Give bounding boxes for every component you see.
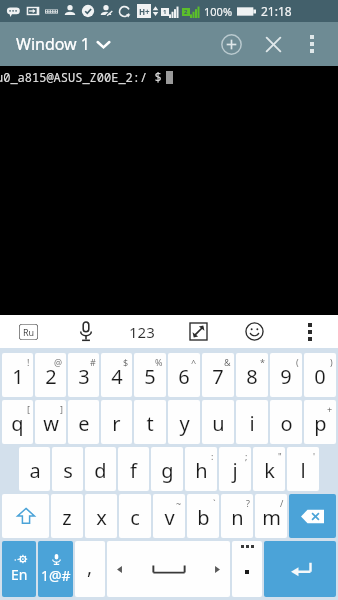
button[interactable]: 4	[101, 353, 132, 397]
staticText: Window 1	[16, 33, 90, 55]
button[interactable]: l	[287, 447, 319, 491]
staticText: 1	[163, 8, 167, 16]
staticText: 21:18	[261, 3, 292, 19]
button[interactable]: h	[185, 447, 217, 491]
button[interactable]: Emoji	[226, 315, 282, 348]
staticText: +	[327, 403, 333, 415]
button[interactable]: Language settings	[2, 541, 36, 597]
button[interactable]: m	[255, 494, 287, 538]
button[interactable]: 3	[68, 353, 99, 397]
staticText: z	[62, 504, 72, 531]
button[interactable]: Close window	[256, 27, 290, 61]
button[interactable]: b	[187, 494, 219, 538]
staticText: m	[262, 504, 281, 531]
staticText: ]	[60, 403, 63, 415]
staticText: 6	[178, 363, 190, 390]
staticText: v	[164, 504, 175, 531]
button[interactable]: n	[221, 494, 253, 538]
staticText: #	[90, 356, 96, 368]
button[interactable]: c	[119, 494, 151, 538]
staticText: s	[63, 457, 73, 484]
staticText: 5	[144, 363, 156, 390]
button[interactable]: y	[168, 400, 200, 444]
staticText: 0	[314, 363, 326, 390]
staticText: 2	[184, 8, 188, 16]
button[interactable]: 123	[114, 315, 170, 348]
button[interactable]: Space	[107, 541, 230, 597]
staticText: d	[94, 457, 107, 484]
staticText: @	[54, 356, 63, 368]
staticText: u	[212, 410, 225, 437]
staticText: 4	[111, 363, 123, 390]
button[interactable]: Voice input	[57, 315, 114, 348]
button[interactable]: j	[219, 447, 251, 491]
button[interactable]: d	[85, 447, 116, 491]
staticText: 123	[129, 322, 155, 342]
button[interactable]: x	[85, 494, 117, 538]
button[interactable]: i	[236, 400, 268, 444]
button[interactable]: Symbols and voice	[38, 541, 73, 597]
staticText: h	[195, 457, 208, 484]
staticText: q	[11, 410, 24, 437]
staticText: '	[313, 450, 316, 462]
button[interactable]: Enter	[264, 541, 336, 597]
button[interactable]: w	[35, 400, 66, 444]
button[interactable]: 6	[168, 353, 200, 397]
button[interactable]: f	[118, 447, 149, 491]
staticText: &	[224, 356, 231, 368]
staticText: x	[96, 504, 107, 531]
button[interactable]: More options	[296, 28, 328, 60]
staticText: 1@#	[41, 566, 71, 585]
button[interactable]: 1	[2, 353, 33, 397]
button[interactable]: 5	[134, 353, 166, 397]
button[interactable]: 7	[202, 353, 234, 397]
staticText: :	[211, 450, 214, 462]
button[interactable]: r	[101, 400, 132, 444]
button[interactable]: v	[153, 494, 185, 538]
button[interactable]: 8	[236, 353, 268, 397]
staticText: ?	[246, 497, 250, 509]
button[interactable]: Resize keyboard	[170, 315, 226, 348]
staticText: !	[27, 356, 30, 368]
button[interactable]: 9	[270, 353, 302, 397]
button[interactable]: Backspace	[289, 494, 336, 538]
staticText: ,	[87, 554, 93, 580]
staticText: 3	[78, 363, 90, 390]
staticText: )	[330, 356, 333, 368]
button[interactable]: 2	[35, 353, 66, 397]
staticText: [	[27, 403, 30, 415]
button[interactable]: o	[270, 400, 302, 444]
button[interactable]: e	[68, 400, 99, 444]
staticText: ;	[245, 450, 248, 462]
button[interactable]: a	[19, 447, 50, 491]
staticText: `	[213, 497, 216, 509]
button[interactable]: z	[51, 494, 83, 538]
staticText: H+	[139, 6, 150, 17]
button[interactable]: s	[52, 447, 83, 491]
staticText: n	[231, 504, 244, 531]
button[interactable]: Period	[232, 541, 262, 597]
staticText: 7	[212, 363, 224, 390]
staticText: k	[264, 457, 275, 484]
staticText: 9	[280, 363, 292, 390]
button[interactable]: Comma	[75, 541, 105, 597]
staticText: 1	[12, 363, 24, 390]
staticText: j	[232, 457, 238, 484]
staticText: t	[146, 410, 154, 437]
button[interactable]: New window	[214, 27, 248, 61]
staticText: b	[197, 504, 210, 531]
button[interactable]: More keyboard options	[282, 315, 338, 348]
button[interactable]: Window 1	[14, 27, 112, 61]
button[interactable]: t	[134, 400, 166, 444]
button[interactable]: u	[202, 400, 234, 444]
staticText: *	[260, 356, 265, 368]
button[interactable]: Language	[0, 315, 57, 348]
staticText: y	[179, 410, 190, 437]
button[interactable]: p	[304, 400, 336, 444]
button[interactable]: Shift	[2, 494, 49, 538]
button[interactable]: q	[2, 400, 33, 444]
button[interactable]: g	[151, 447, 183, 491]
staticText: r	[112, 410, 121, 437]
button[interactable]: k	[253, 447, 285, 491]
button[interactable]: 0	[304, 353, 336, 397]
